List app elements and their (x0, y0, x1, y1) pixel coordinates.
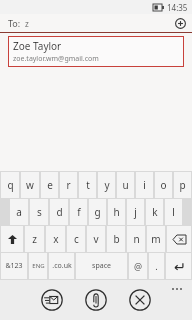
button[interactable]: Attach (82, 286, 110, 314)
button[interactable]: x (46, 226, 65, 252)
staticText: c (74, 232, 79, 246)
button[interactable]: To: (0, 14, 192, 32)
staticText: zoe.taylor.wm@gmail.com (13, 54, 99, 64)
staticText: w (26, 178, 34, 192)
button[interactable]: s (30, 199, 48, 225)
button[interactable]: ENG (29, 253, 47, 279)
staticText: i (143, 178, 146, 192)
button[interactable]: Backspace (167, 226, 191, 252)
button[interactable]: v (87, 226, 105, 252)
staticText: h (113, 205, 120, 219)
staticText: t (86, 178, 90, 192)
staticText: .co.uk (52, 261, 72, 271)
button[interactable]: Shift (1, 226, 23, 252)
button[interactable]: o (155, 172, 172, 198)
staticText: d (56, 205, 63, 219)
button[interactable]: y (98, 172, 115, 198)
button[interactable]: u (117, 172, 134, 198)
staticText: l (172, 205, 175, 219)
button[interactable]: Add recipient (172, 15, 188, 31)
staticText: 14:35 (167, 2, 188, 13)
button[interactable]: j (127, 199, 144, 225)
staticText: e (47, 178, 53, 192)
staticText: g (94, 205, 101, 219)
button[interactable]: &123 (1, 253, 27, 279)
button[interactable]: k (146, 199, 163, 225)
staticText: b (113, 232, 120, 246)
button[interactable]: z (25, 226, 44, 252)
staticText: v (93, 232, 99, 246)
button[interactable]: a (10, 199, 28, 225)
button[interactable]: f (70, 199, 87, 225)
button[interactable]: Enter (166, 253, 191, 279)
staticText: . (155, 260, 158, 272)
staticText: &123 (5, 261, 23, 271)
button[interactable]: t (79, 172, 96, 198)
button[interactable]: d (50, 199, 68, 225)
button[interactable]: More options (170, 286, 184, 292)
staticText: f (77, 205, 81, 219)
staticText: s (37, 205, 42, 219)
staticText: y (104, 178, 110, 192)
button[interactable]: g (89, 199, 106, 225)
button[interactable]: c (67, 226, 85, 252)
staticText: z (32, 232, 37, 246)
staticText: Zoe Taylor (13, 39, 62, 53)
button[interactable]: h (108, 199, 125, 225)
staticText: To: (8, 17, 21, 29)
staticText: n (133, 232, 140, 246)
staticText: z (25, 18, 29, 29)
button[interactable]: Close (126, 286, 154, 314)
staticText: o (160, 178, 167, 192)
staticText: @ (134, 260, 143, 272)
button[interactable]: space (76, 253, 127, 279)
button[interactable]: q (1, 172, 19, 198)
staticText: r (66, 178, 71, 192)
button[interactable]: Zoe Taylor (8, 36, 184, 67)
staticText: k (152, 205, 158, 219)
button[interactable]: @ (129, 253, 147, 279)
button[interactable]: i (136, 172, 153, 198)
button[interactable]: Send (38, 286, 66, 314)
staticText: ENG (32, 262, 45, 270)
staticText: q (7, 178, 14, 192)
staticText: a (16, 205, 22, 219)
button[interactable]: r (60, 172, 77, 198)
button[interactable]: m (147, 226, 165, 252)
button[interactable]: b (107, 226, 125, 252)
staticText: p (179, 178, 186, 192)
button[interactable]: l (165, 199, 182, 225)
button[interactable]: n (127, 226, 145, 252)
button[interactable]: w (21, 172, 39, 198)
button[interactable]: . (149, 253, 164, 279)
staticText: m (151, 232, 161, 246)
button[interactable]: e (41, 172, 58, 198)
staticText: x (53, 232, 59, 246)
staticText: j (134, 205, 137, 219)
button[interactable]: .co.uk (49, 253, 74, 279)
staticText: u (122, 178, 129, 192)
button[interactable]: p (174, 172, 191, 198)
staticText: space (92, 261, 111, 271)
